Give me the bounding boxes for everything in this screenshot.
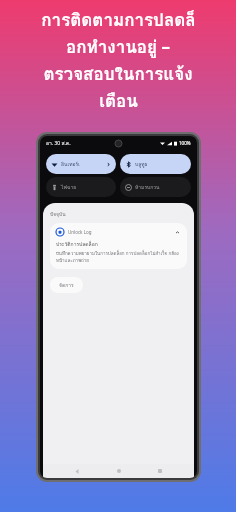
button[interactable]: Recents — [153, 464, 167, 478]
button[interactable]: อินเทอร์เน็ต — [46, 154, 116, 174]
button[interactable]: ห้ามรบกวน — [120, 177, 191, 197]
staticText: บันทึกความพยายามในการปลดล็อก การปลดล็อกไ… — [56, 250, 181, 264]
button[interactable]: Back — [70, 464, 84, 478]
staticText: ปัจจุบัน — [50, 210, 66, 218]
staticText: การติดตามการปลดล็ — [41, 6, 196, 33]
staticText: บลูทูธ — [135, 160, 148, 168]
staticText: ประวัติการปลดล็อก — [56, 240, 98, 248]
staticText: เตือน — [99, 87, 138, 114]
staticText: อินเทอร์เน็ต — [61, 160, 83, 168]
staticText: Unlock Log — [68, 229, 92, 235]
button[interactable]: Home — [112, 464, 126, 478]
staticText: ไฟฉาย — [61, 183, 77, 191]
button[interactable]: Unlock Log — [50, 223, 187, 269]
staticText: ตรวจสอบในการแจ้ง — [43, 60, 193, 87]
button[interactable]: Collapse notification — [173, 228, 181, 236]
staticText: 100% — [179, 140, 191, 146]
button[interactable]: ไฟฉาย — [46, 177, 116, 197]
button[interactable]: บลูทูธ — [120, 154, 191, 174]
staticText: จัดการ — [59, 281, 74, 289]
staticText: อกทำงานอยู่ – — [66, 33, 170, 60]
staticText: อา. 30 ส.ค. — [46, 139, 71, 147]
button[interactable]: จัดการ — [50, 277, 83, 293]
staticText: ห้ามรบกวน — [135, 183, 160, 191]
